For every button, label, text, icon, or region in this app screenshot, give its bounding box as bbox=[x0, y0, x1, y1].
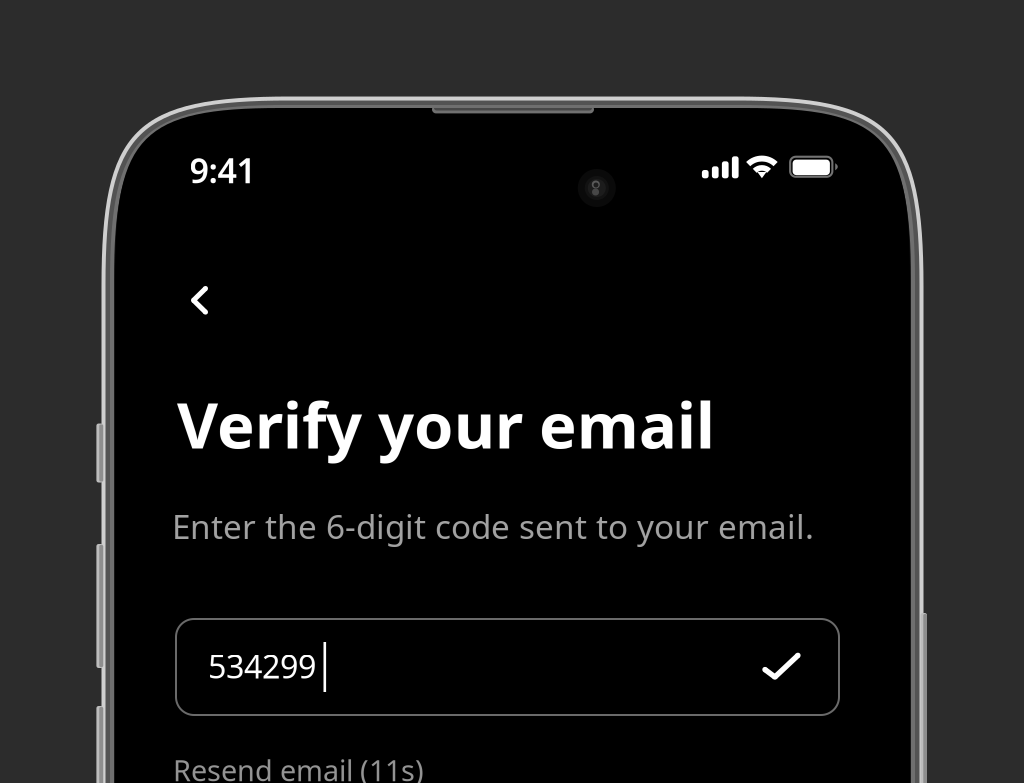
button[interactable]: Back bbox=[115, 108, 910, 783]
staticText: Enter the 6-digit code sent to your emai… bbox=[172, 503, 814, 549]
staticText: 9:41 bbox=[189, 147, 255, 193]
staticText: 534299 bbox=[208, 644, 316, 688]
staticText: Verify your email bbox=[177, 381, 715, 467]
staticText: Resend email (11s) bbox=[173, 750, 424, 783]
button[interactable]: Resend email (11s) bbox=[115, 108, 910, 783]
